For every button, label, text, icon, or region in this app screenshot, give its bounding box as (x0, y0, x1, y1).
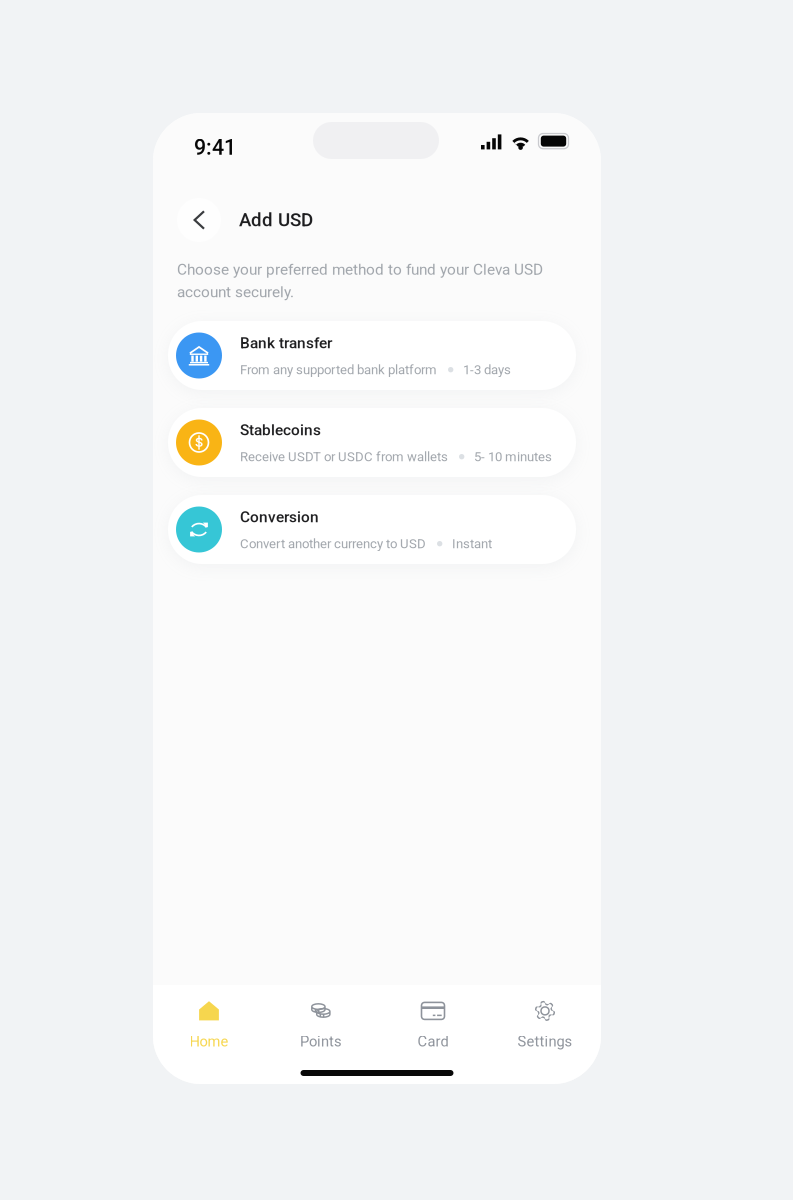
staticText: Instant (452, 536, 492, 551)
staticText: Choose your preferred method to fund you… (177, 260, 543, 278)
staticText: Stablecoins (240, 421, 321, 439)
button[interactable]: Settings (489, 997, 601, 1053)
button[interactable]: Home (153, 997, 265, 1053)
staticText: Convert another currency to USD (240, 536, 426, 551)
staticText: 9:41 (194, 135, 236, 160)
staticText: S (195, 434, 203, 450)
staticText: Settings (517, 1033, 572, 1050)
staticText: Points (300, 1033, 342, 1050)
button[interactable]: Bank transfer (168, 321, 576, 390)
button[interactable]: Points (265, 997, 377, 1053)
button[interactable]: Back (177, 198, 221, 242)
staticText: Add USD (239, 209, 313, 231)
staticText: Receive USDT or USDC from wallets (240, 449, 448, 464)
button[interactable]: Card (377, 997, 489, 1053)
staticText: From any supported bank platform (240, 362, 437, 377)
button[interactable]: S (168, 408, 576, 477)
staticText: 1-3 days (463, 362, 511, 377)
staticText: Card (417, 1033, 448, 1050)
staticText: Home (189, 1033, 228, 1050)
staticText: account securely. (177, 283, 294, 301)
button[interactable]: Conversion (168, 495, 576, 564)
staticText: 5- 10 minutes (474, 449, 552, 464)
staticText: Bank transfer (240, 334, 332, 352)
staticText: Conversion (240, 508, 319, 526)
